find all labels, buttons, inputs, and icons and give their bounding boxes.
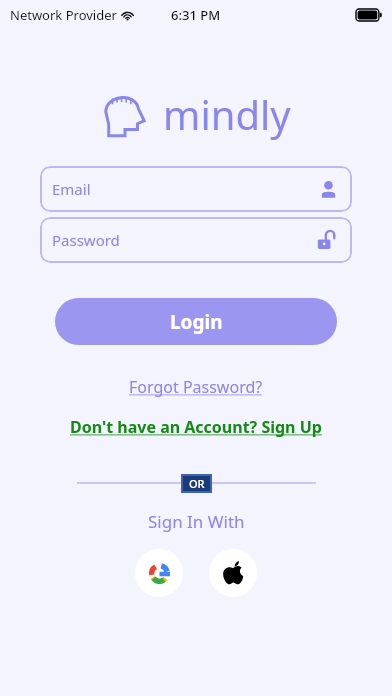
button[interactable]: Email <box>40 166 352 212</box>
button[interactable]: Sign in with Apple <box>209 549 257 597</box>
staticText: Email <box>52 179 91 199</box>
staticText: Don't have an Account? Sign Up <box>70 416 322 438</box>
staticText: Sign In With <box>148 510 245 533</box>
other: Account <box>319 180 338 199</box>
other: Show password <box>317 230 338 251</box>
button[interactable]: Sign in with Google <box>135 549 183 597</box>
button[interactable]: Don't have an Account? Sign Up <box>62 414 330 440</box>
button[interactable]: Login <box>55 298 337 345</box>
button[interactable]: Forgot Password? <box>121 374 271 400</box>
button[interactable]: Password <box>40 217 352 263</box>
staticText: Forgot Password? <box>129 376 263 398</box>
staticText: OR <box>189 476 205 491</box>
staticText: mindly <box>163 87 291 141</box>
staticText: 6:31 PM <box>171 6 221 24</box>
staticText: Password <box>52 230 120 250</box>
staticText: Network Provider <box>10 6 117 24</box>
staticText: Login <box>170 309 223 335</box>
